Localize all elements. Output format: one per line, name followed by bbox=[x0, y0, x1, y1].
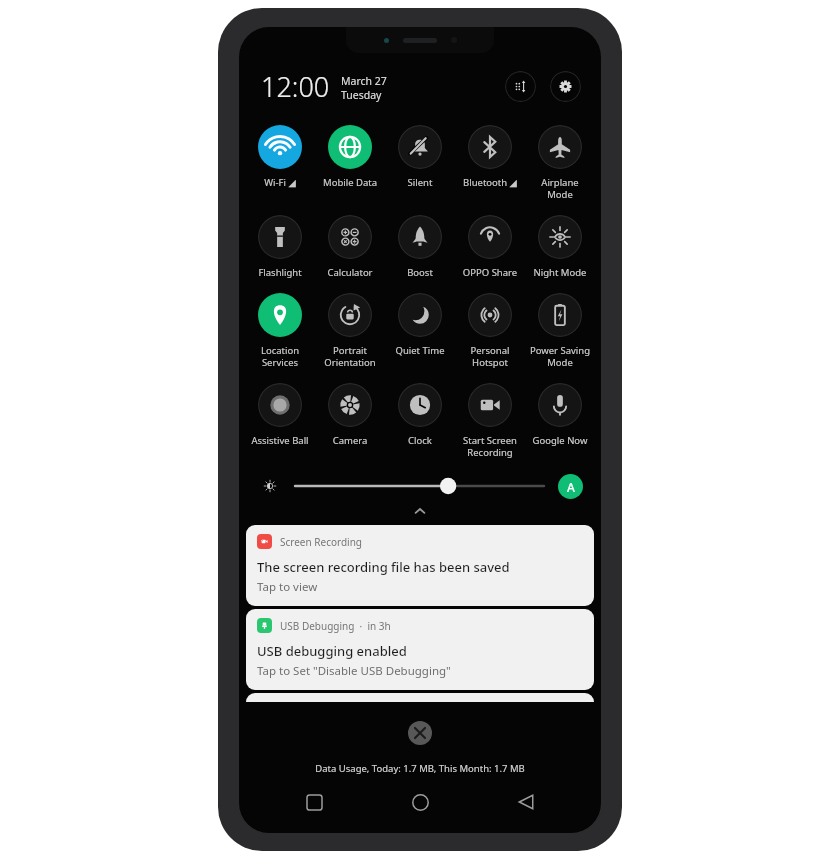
button[interactable]: Personal Hotspot bbox=[455, 293, 525, 369]
staticText: Google Now bbox=[527, 434, 593, 447]
staticText: Screen Recording bbox=[280, 535, 362, 549]
button[interactable]: Flashlight bbox=[245, 215, 315, 279]
staticText: Tuesday bbox=[341, 88, 382, 102]
staticText: Airplane Mode bbox=[527, 176, 593, 201]
button[interactable]: Clear all notifications bbox=[408, 721, 432, 745]
button[interactable]: Screen Recording bbox=[246, 525, 594, 606]
button[interactable]: Back bbox=[509, 785, 543, 819]
button[interactable]: Night Mode bbox=[525, 215, 595, 279]
staticText: Data Usage, Today: 1.7 MB, This Month: 1… bbox=[239, 762, 601, 775]
button[interactable]: Location Services bbox=[245, 293, 315, 369]
staticText: USB debugging enabled bbox=[257, 642, 407, 660]
button[interactable]: Calculator bbox=[315, 215, 385, 279]
button[interactable]: A bbox=[558, 474, 583, 499]
button[interactable]: Expand bbox=[239, 501, 601, 521]
button[interactable]: Silent bbox=[385, 125, 455, 189]
staticText: Night Mode bbox=[527, 266, 593, 279]
staticText: Clock bbox=[387, 434, 453, 447]
staticText: A bbox=[567, 479, 575, 495]
button[interactable]: Start Screen Recording bbox=[455, 383, 525, 459]
button[interactable]: Recents bbox=[297, 785, 331, 819]
staticText: Location Services bbox=[247, 344, 313, 369]
button[interactable]: USB Debugging · in 3h bbox=[246, 609, 594, 690]
button[interactable]: Power Saving Mode bbox=[525, 293, 595, 369]
staticText: Wi-Fi ◢ bbox=[247, 176, 313, 189]
button[interactable]: Mobile Data bbox=[315, 125, 385, 189]
staticText: Mobile Data bbox=[317, 176, 383, 189]
button[interactable]: Home bbox=[403, 785, 437, 819]
button[interactable]: Boost bbox=[385, 215, 455, 279]
button[interactable]: Airplane Mode bbox=[525, 125, 595, 201]
button[interactable]: Assistive Ball bbox=[245, 383, 315, 447]
button[interactable]: Bluetooth ◢ bbox=[455, 125, 525, 189]
staticText: Quiet Time bbox=[387, 344, 453, 357]
button[interactable]: Clock bbox=[385, 383, 455, 447]
staticText: Calculator bbox=[317, 266, 383, 279]
staticText: 12:00 bbox=[261, 68, 330, 105]
staticText: Camera bbox=[317, 434, 383, 447]
staticText: USB Debugging · in 3h bbox=[280, 619, 391, 633]
button[interactable]: Wi-Fi ◢ bbox=[245, 125, 315, 189]
staticText: The screen recording file has been saved bbox=[257, 558, 510, 576]
button[interactable]: Brightness bbox=[259, 475, 281, 497]
staticText: Silent bbox=[387, 176, 453, 189]
staticText: Flashlight bbox=[247, 266, 313, 279]
staticText: March 27 bbox=[341, 74, 387, 88]
button[interactable]: Camera bbox=[315, 383, 385, 447]
staticText: Tap to view bbox=[257, 579, 318, 595]
staticText: Assistive Ball bbox=[247, 434, 313, 447]
button[interactable]: Quiet Time bbox=[385, 293, 455, 357]
button[interactable]: Brightness slider bbox=[295, 475, 544, 497]
button[interactable]: Google Now bbox=[525, 383, 595, 447]
staticText: Boost bbox=[387, 266, 453, 279]
staticText: OPPO Share bbox=[457, 266, 523, 279]
button[interactable]: Portrait Orientation bbox=[315, 293, 385, 369]
staticText: Portrait Orientation bbox=[317, 344, 383, 369]
staticText: Start Screen Recording bbox=[457, 434, 523, 459]
staticText: Tap to Set "Disable USB Debugging" bbox=[257, 663, 451, 679]
button[interactable]: OPPO Share bbox=[455, 215, 525, 279]
staticText: Bluetooth ◢ bbox=[457, 176, 523, 189]
staticText: Personal Hotspot bbox=[457, 344, 523, 369]
button[interactable]: Settings bbox=[550, 71, 581, 102]
button[interactable] bbox=[246, 693, 594, 702]
staticText: Power Saving Mode bbox=[527, 344, 593, 369]
button[interactable]: Edit tiles bbox=[505, 71, 536, 102]
